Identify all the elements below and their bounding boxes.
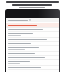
button[interactable] <box>6 52 59 55</box>
button[interactable] <box>6 60 59 65</box>
button[interactable] <box>6 32 59 37</box>
button[interactable] <box>6 66 59 69</box>
button[interactable] <box>6 28 59 31</box>
button[interactable] <box>6 23 59 27</box>
button[interactable] <box>6 46 59 51</box>
button[interactable]: Search <box>6 18 59 22</box>
button[interactable] <box>6 56 59 59</box>
button[interactable] <box>6 42 59 45</box>
button[interactable] <box>6 38 59 41</box>
